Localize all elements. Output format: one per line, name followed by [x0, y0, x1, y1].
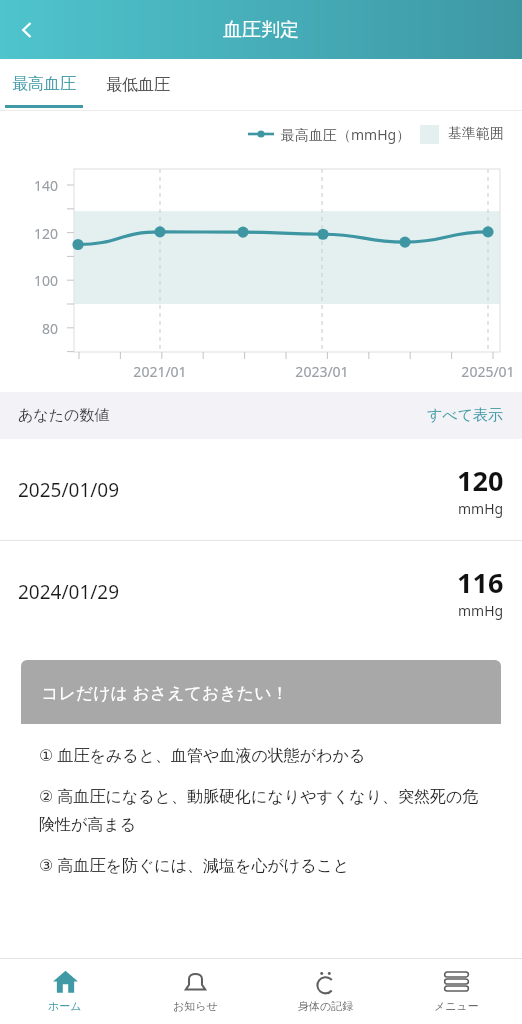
- staticText: 最高血圧: [12, 74, 76, 94]
- staticText: 116: [457, 564, 504, 601]
- staticText: 2025/01/09: [18, 477, 120, 503]
- staticText: お知らせ: [173, 999, 218, 1013]
- staticText: メニュー: [434, 999, 479, 1013]
- staticText: 140: [14, 176, 58, 195]
- staticText: 2024/01/29: [18, 579, 120, 605]
- button[interactable]: 2025/01/09: [0, 439, 522, 540]
- staticText: 80: [14, 319, 58, 338]
- staticText: 基準範囲: [448, 125, 504, 143]
- staticText: 2023/01: [277, 362, 367, 381]
- staticText: あなたの数値: [18, 406, 110, 425]
- button[interactable]: コレだけは おさえておきたい！: [21, 660, 501, 900]
- staticText: 身体の記録: [298, 999, 354, 1013]
- staticText: ② 高血圧になると、動脈硬化になりやすくなり、突然死の危険性が高まる: [39, 785, 487, 835]
- staticText: コレだけは おさえておきたい！: [41, 681, 289, 704]
- button[interactable]: Back: [0, 3, 54, 57]
- button[interactable]: メニュー: [391, 959, 522, 1024]
- button[interactable]: 最低血圧: [88, 59, 188, 111]
- staticText: ③ 高血圧を防ぐには、減塩を心がけること: [39, 854, 350, 876]
- staticText: すべて表示: [427, 406, 504, 425]
- staticText: 2025/01: [443, 362, 522, 381]
- button[interactable]: ホーム: [0, 959, 130, 1024]
- staticText: 100: [14, 271, 58, 290]
- staticText: 120: [14, 224, 58, 243]
- staticText: 2021/01: [115, 362, 205, 381]
- staticText: mmHg: [458, 499, 504, 518]
- staticText: 最低血圧: [106, 75, 170, 95]
- button[interactable]: お知らせ: [130, 959, 260, 1024]
- staticText: 最高血圧（mmHg）: [281, 125, 411, 144]
- button[interactable]: 最高血圧: [0, 59, 88, 111]
- button[interactable]: 2024/01/29: [0, 541, 522, 642]
- staticText: mmHg: [458, 601, 504, 620]
- staticText: ① 血圧をみると、血管や血液の状態がわかる: [39, 744, 366, 766]
- staticText: 血圧判定: [223, 18, 299, 42]
- button[interactable]: すべて表示: [427, 406, 504, 425]
- staticText: 120: [457, 462, 504, 499]
- staticText: ホーム: [48, 999, 82, 1013]
- button[interactable]: 身体の記録: [260, 959, 391, 1024]
